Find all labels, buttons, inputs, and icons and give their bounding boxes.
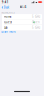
button[interactable]: Guest <box>2 20 42 25</box>
staticText: Back <box>4 6 9 9</box>
staticText: 5 GHz <box>32 15 40 18</box>
staticText: 5 GHz <box>32 26 40 29</box>
staticText: Home <box>4 15 12 18</box>
button[interactable]: Lab <box>2 25 42 30</box>
button[interactable]: Back <box>1 5 9 10</box>
staticText: 9:41 <box>2 0 9 4</box>
staticText: Open <box>32 20 40 24</box>
staticText: Guest <box>4 20 12 24</box>
button[interactable]: Learn more <box>1 30 16 34</box>
staticText: Wi-Fi <box>19 6 26 9</box>
button[interactable]: Home <box>2 14 42 19</box>
staticText: Lab <box>4 26 8 29</box>
staticText: NETWORKS <box>1 11 14 14</box>
staticText: Learn more <box>1 30 16 33</box>
